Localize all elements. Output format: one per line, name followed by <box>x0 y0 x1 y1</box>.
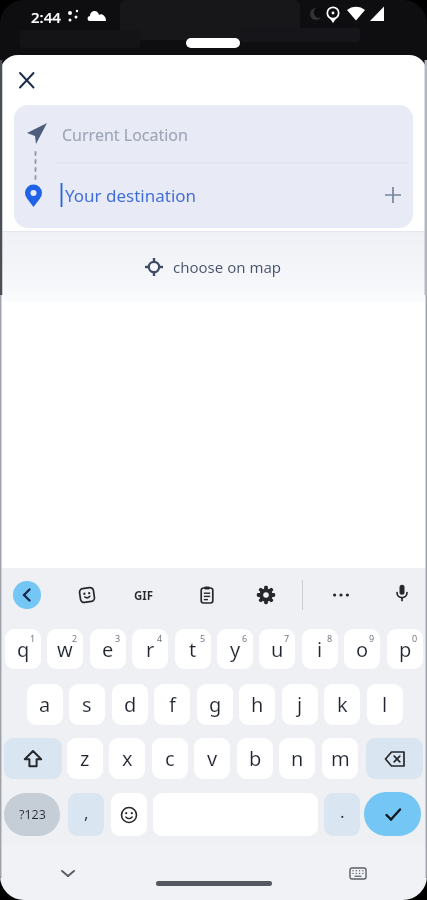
staticText: b <box>249 745 262 772</box>
button[interactable]: b <box>237 738 273 779</box>
staticText: p <box>399 636 412 663</box>
button[interactable]: l <box>367 684 403 725</box>
staticText: y <box>230 636 241 663</box>
staticText: ?123 <box>19 806 46 823</box>
button[interactable]: GIF <box>134 588 154 604</box>
staticText: g <box>209 691 222 718</box>
staticText: . <box>340 800 345 823</box>
staticText: d <box>124 691 137 718</box>
staticText: 0 <box>412 632 418 644</box>
button[interactable] <box>366 738 423 779</box>
staticText: x <box>122 745 133 772</box>
staticText: 9 <box>369 632 375 644</box>
button[interactable]: . <box>324 793 360 836</box>
staticText: r <box>146 636 155 663</box>
button[interactable] <box>392 583 412 603</box>
button[interactable] <box>13 581 41 609</box>
button[interactable]: o <box>344 629 380 669</box>
button[interactable] <box>58 863 78 883</box>
staticText: c <box>165 745 175 772</box>
button[interactable]: n <box>279 738 315 779</box>
staticText: i <box>317 636 323 663</box>
button[interactable]: x <box>109 738 145 779</box>
staticText: h <box>251 691 264 718</box>
button[interactable]: y <box>217 629 253 669</box>
staticText: t <box>189 636 197 663</box>
button[interactable]: m <box>322 738 358 779</box>
button[interactable]: r <box>132 629 168 669</box>
button[interactable]: t <box>175 629 211 669</box>
button[interactable] <box>364 792 421 836</box>
staticText: , <box>84 801 89 824</box>
staticText: 3 <box>115 632 121 644</box>
staticText: z <box>80 745 90 772</box>
button[interactable]: d <box>112 684 148 725</box>
staticText: 6 <box>242 632 248 644</box>
staticText: 8 <box>327 632 333 644</box>
staticText: w <box>57 636 73 663</box>
button[interactable]: e <box>90 629 126 669</box>
button[interactable]: f <box>154 684 190 725</box>
staticText: e <box>102 636 114 663</box>
staticText: o <box>356 636 369 663</box>
staticText: Current Location <box>62 124 188 146</box>
button[interactable]: c <box>152 738 188 779</box>
staticText: n <box>291 745 304 772</box>
staticText: u <box>271 636 284 663</box>
staticText: m <box>331 745 350 772</box>
button[interactable]: z <box>67 738 103 779</box>
button[interactable]: , <box>68 793 104 836</box>
button[interactable]: i <box>302 629 338 669</box>
staticText: 2:44 <box>31 7 61 27</box>
button[interactable]: u <box>259 629 295 669</box>
button[interactable]: ?123 <box>4 793 60 836</box>
button[interactable] <box>12 66 42 96</box>
button[interactable]: w <box>47 629 83 669</box>
staticText: j <box>297 691 303 718</box>
button[interactable] <box>348 864 368 884</box>
staticText: Your destination <box>65 184 197 207</box>
button[interactable]: k <box>324 684 360 725</box>
button[interactable] <box>256 585 276 605</box>
button[interactable]: s <box>69 684 105 725</box>
staticText: 4 <box>157 632 163 644</box>
staticText: a <box>39 691 51 718</box>
staticText: l <box>382 691 388 718</box>
button[interactable]: v <box>194 738 230 779</box>
staticText: 5 <box>200 632 206 644</box>
button[interactable]: p <box>387 629 423 669</box>
button[interactable]: h <box>239 684 275 725</box>
staticText: 1 <box>30 632 36 644</box>
button[interactable]: q <box>5 629 41 669</box>
staticText: choose on map <box>173 257 282 277</box>
button[interactable] <box>111 793 147 836</box>
button[interactable] <box>331 585 351 605</box>
staticText: 7 <box>284 632 290 644</box>
staticText: s <box>82 691 92 718</box>
staticText: f <box>169 691 176 718</box>
button[interactable]: choose on map <box>0 232 427 302</box>
staticText: k <box>337 691 348 718</box>
button[interactable] <box>4 738 62 779</box>
staticText: v <box>207 745 218 772</box>
staticText: q <box>17 636 30 663</box>
staticText: 2 <box>72 632 78 644</box>
button[interactable]: j <box>282 684 318 725</box>
button[interactable]: g <box>197 684 233 725</box>
button[interactable] <box>77 585 97 605</box>
button[interactable] <box>197 585 217 605</box>
button[interactable]: a <box>27 684 63 725</box>
